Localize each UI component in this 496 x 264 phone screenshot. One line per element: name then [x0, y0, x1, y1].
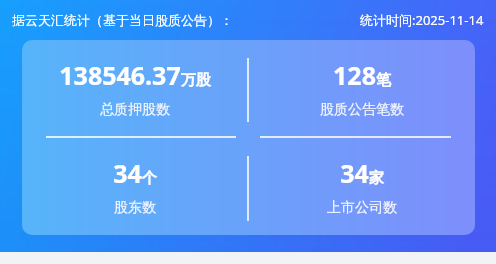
staticText: 138546.37万股 — [59, 58, 211, 92]
staticText: 34个 — [113, 156, 157, 190]
button[interactable]: 128笔 — [249, 40, 475, 136]
staticText: 128笔 — [333, 58, 391, 92]
staticText: 总质押股数 — [100, 101, 170, 119]
button[interactable]: 138546.37万股 — [22, 40, 247, 136]
staticText: 统计时间:2025-11-14 — [360, 11, 484, 29]
staticText: 股质公告笔数 — [320, 101, 404, 119]
staticText: 股东数 — [114, 199, 156, 217]
staticText: 据云天汇统计（基于当日股质公告）： — [12, 12, 233, 28]
button[interactable]: 34个 — [22, 138, 247, 235]
staticText: 上市公司数 — [327, 199, 397, 217]
staticText: 34家 — [340, 156, 384, 190]
button[interactable]: 34家 — [249, 138, 475, 235]
